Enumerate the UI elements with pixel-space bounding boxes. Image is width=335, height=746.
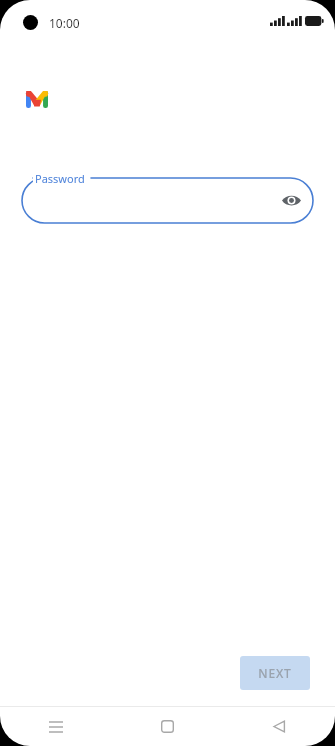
button[interactable]: NEXT xyxy=(240,656,310,690)
button[interactable]: Back xyxy=(223,707,335,746)
staticText: 10:00 xyxy=(49,15,80,31)
button[interactable]: Password xyxy=(22,171,313,223)
button[interactable]: Show password xyxy=(279,188,303,212)
staticText: NEXT xyxy=(258,665,292,681)
button[interactable]: Recents xyxy=(0,707,111,746)
staticText: Password xyxy=(35,171,85,186)
button[interactable]: Home xyxy=(111,707,223,746)
